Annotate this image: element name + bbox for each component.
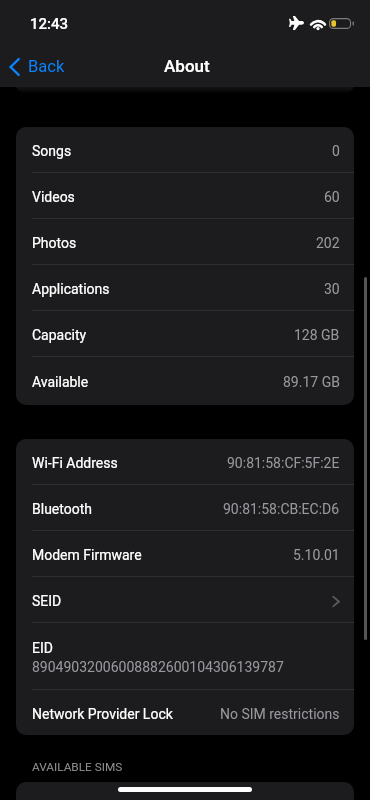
other: Battery [329, 18, 354, 29]
staticText: 12:43 [30, 15, 69, 33]
staticText: Back [28, 57, 65, 76]
staticText: 90:81:58:CB:EC:D6 [223, 501, 340, 517]
button[interactable]: Capacity [16, 311, 354, 357]
staticText: Capacity [32, 327, 87, 343]
staticText: Applications [32, 281, 110, 297]
button[interactable]: Bluetooth [16, 485, 354, 531]
staticText: No SIM restrictions [220, 706, 340, 722]
staticText: 0 [332, 143, 340, 159]
button[interactable]: Back [0, 51, 73, 82]
staticText: Songs [32, 143, 72, 159]
staticText: About [164, 56, 210, 76]
staticText: Wi-Fi Address [32, 455, 118, 471]
button[interactable]: Photos [16, 219, 354, 265]
button[interactable]: Videos [16, 173, 354, 219]
staticText: Videos [32, 189, 75, 205]
staticText: Network Provider Lock [32, 706, 173, 722]
staticText: Photos [32, 235, 77, 251]
button[interactable]: Songs [16, 127, 354, 173]
staticText: AVAILABLE SIMS [32, 760, 123, 774]
staticText: 90:81:58:CF:5F:2E [227, 455, 340, 471]
other: Airplane mode [289, 16, 304, 30]
staticText: 89049032006008882600104306139787 [32, 659, 284, 675]
staticText: 30 [324, 281, 340, 297]
button[interactable]: EID [16, 623, 354, 690]
button[interactable]: Modem Firmware [16, 531, 354, 577]
button[interactable]: Applications [16, 265, 354, 311]
staticText: Available [32, 374, 89, 390]
staticText: 202 [316, 235, 340, 251]
staticText: EID [32, 640, 53, 656]
other: Wi-Fi [311, 17, 325, 30]
button[interactable]: SEID [16, 577, 354, 623]
staticText: SEID [32, 593, 62, 609]
staticText: 60 [324, 189, 340, 205]
button[interactable]: Wi-Fi Address [16, 439, 354, 485]
staticText: 89.17 GB [283, 374, 340, 390]
staticText: Modem Firmware [32, 547, 142, 563]
button[interactable]: Network Provider Lock [16, 690, 354, 735]
staticText: 128 GB [294, 327, 340, 343]
button[interactable]: Available [16, 357, 354, 405]
staticText: Bluetooth [32, 501, 92, 517]
staticText: 5.10.01 [293, 547, 340, 563]
